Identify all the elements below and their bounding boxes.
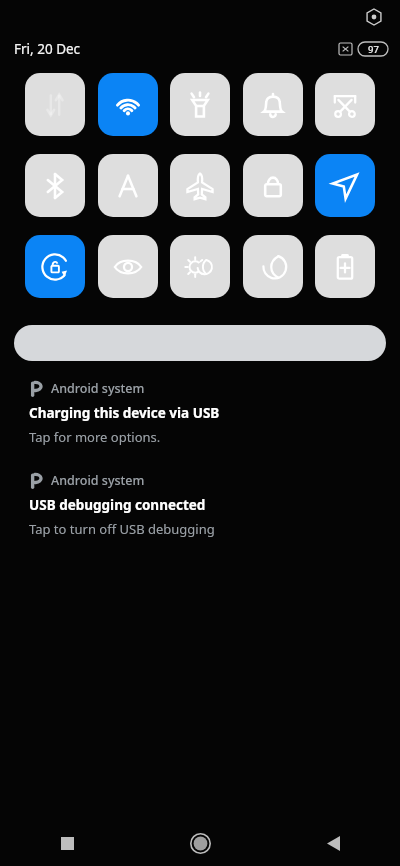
button[interactable]: Back bbox=[267, 820, 400, 866]
button[interactable]: Mobile data bbox=[25, 73, 85, 136]
staticText: 97 bbox=[368, 43, 379, 56]
button[interactable]: Font size bbox=[98, 154, 158, 217]
staticText: Android system bbox=[51, 472, 145, 489]
button[interactable]: Battery saver bbox=[315, 235, 375, 298]
button[interactable]: Airplane mode bbox=[170, 154, 230, 217]
staticText: Charging this device via USB bbox=[29, 404, 220, 422]
button[interactable]: Wi-Fi bbox=[98, 73, 158, 136]
button[interactable]: Eye comfort bbox=[98, 235, 158, 298]
button[interactable]: Screenshot bbox=[315, 73, 375, 136]
button[interactable]: Ringer bbox=[243, 73, 303, 136]
button[interactable]: Home bbox=[134, 820, 267, 866]
staticText: USB debugging connected bbox=[29, 496, 206, 514]
button[interactable]: Bluetooth bbox=[25, 154, 85, 217]
button[interactable]: Do not disturb bbox=[243, 235, 303, 298]
staticText: Android system bbox=[51, 380, 145, 397]
button[interactable]: Android system bbox=[0, 472, 400, 538]
button[interactable]: Android system bbox=[0, 380, 400, 446]
staticText: Tap to turn off USB debugging bbox=[29, 520, 215, 538]
button[interactable]: Settings bbox=[361, 4, 387, 30]
staticText: Fri, 20 Dec bbox=[14, 40, 81, 58]
button[interactable]: Recents bbox=[0, 820, 134, 866]
button[interactable]: Location bbox=[315, 154, 375, 217]
staticText: Tap for more options. bbox=[29, 428, 161, 446]
button[interactable]: Flashlight bbox=[170, 73, 230, 136]
button[interactable]: Dark mode bbox=[170, 235, 230, 298]
button[interactable]: Screen lock bbox=[243, 154, 303, 217]
button[interactable]: Auto rotate bbox=[25, 235, 85, 298]
button[interactable]: Brightness bbox=[14, 325, 386, 361]
